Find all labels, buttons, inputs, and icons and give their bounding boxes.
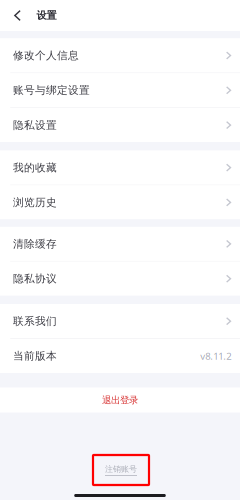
staticText: 注销账号 <box>105 464 137 474</box>
button[interactable]: 联系我们 <box>0 304 240 338</box>
button[interactable]: 浏览历史 <box>0 185 240 219</box>
staticText: 浏览历史 <box>13 196 57 209</box>
staticText: 我的收藏 <box>13 161 57 174</box>
staticText: 设置 <box>37 9 57 22</box>
button[interactable]: 我的收藏 <box>0 151 240 185</box>
button[interactable]: 当前版本 <box>0 339 240 373</box>
staticText: 清除缓存 <box>13 237 57 251</box>
button[interactable]: 账号与绑定设置 <box>0 73 240 107</box>
staticText: 隐私协议 <box>13 272 57 285</box>
staticText: v8.11.2 <box>200 349 231 363</box>
staticText: 账号与绑定设置 <box>13 84 90 97</box>
button[interactable]: 清除缓存 <box>0 227 240 261</box>
staticText: 当前版本 <box>13 349 57 363</box>
staticText: 联系我们 <box>13 314 57 328</box>
button[interactable]: Back <box>0 0 37 31</box>
button[interactable]: 修改个人信息 <box>0 38 240 72</box>
button[interactable]: 注销账号 <box>92 455 148 485</box>
staticText: 修改个人信息 <box>13 49 79 62</box>
button[interactable]: 隐私协议 <box>0 262 240 296</box>
staticText: 退出登录 <box>102 394 138 406</box>
button[interactable]: 退出登录 <box>0 387 240 412</box>
staticText: 隐私设置 <box>13 118 57 132</box>
button[interactable]: 隐私设置 <box>0 108 240 142</box>
